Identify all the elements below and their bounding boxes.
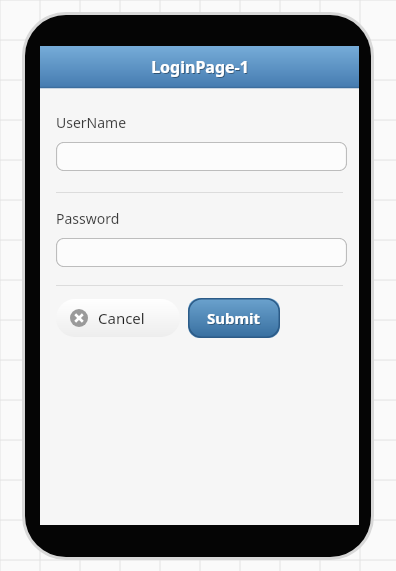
staticText: Submit xyxy=(208,309,262,329)
button[interactable]: Submit xyxy=(188,298,280,338)
staticText: LoginPage-1 xyxy=(152,57,250,79)
staticText: Password xyxy=(56,209,120,228)
staticText: LoginPage-1 xyxy=(151,56,249,78)
button[interactable] xyxy=(56,238,347,267)
staticText: Cancel xyxy=(98,308,145,328)
button[interactable] xyxy=(56,142,347,171)
staticText: UserName xyxy=(56,113,127,132)
button[interactable]: Cancel xyxy=(56,299,180,337)
staticText: Submit xyxy=(207,308,261,328)
